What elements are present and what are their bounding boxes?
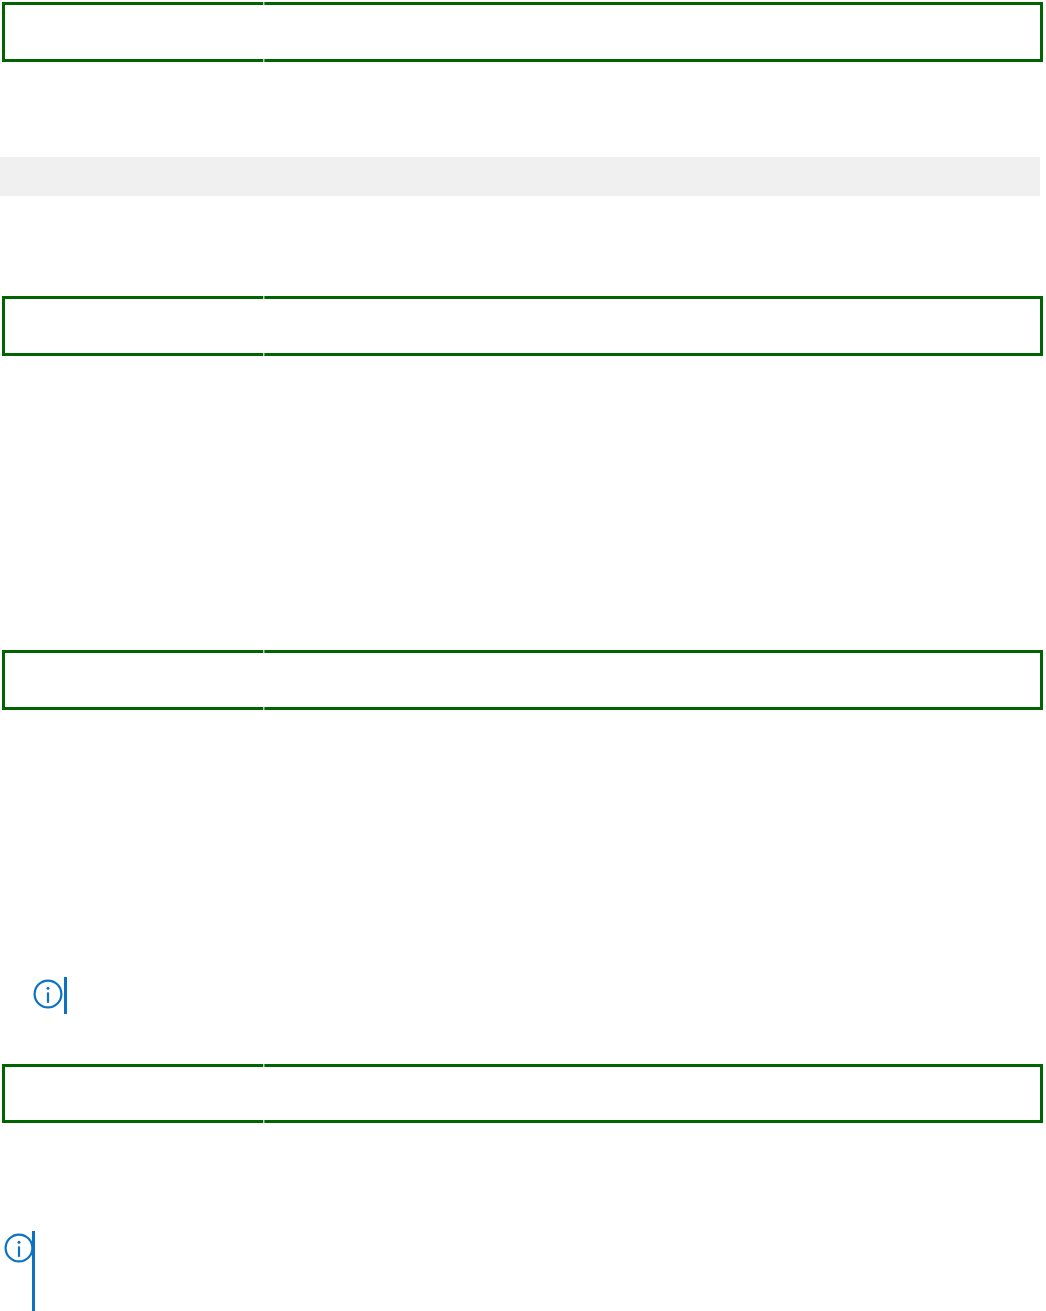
button[interactable]: Table row 1 (2, 2, 1043, 62)
button[interactable]: Information (33, 979, 63, 1009)
button[interactable]: Table row 3 (2, 650, 1043, 710)
button[interactable]: Information (4, 1233, 34, 1263)
button[interactable]: Table row 2 (2, 296, 1043, 356)
button[interactable]: Table row 4 (2, 1064, 1043, 1123)
